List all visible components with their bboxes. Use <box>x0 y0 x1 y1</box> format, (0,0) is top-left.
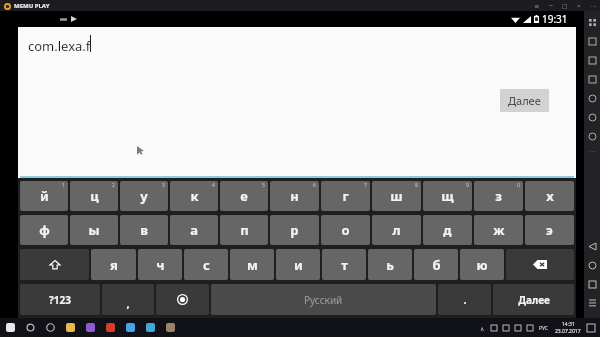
button[interactable]: з <box>474 181 523 211</box>
button[interactable]: л <box>372 215 421 245</box>
button[interactable]: я <box>91 249 136 280</box>
button[interactable]: г <box>321 181 370 211</box>
staticText: 8 <box>415 182 418 189</box>
button[interactable]: Taskbar item 7 <box>145 322 156 333</box>
staticText: к <box>190 187 199 205</box>
staticText: р <box>290 221 299 239</box>
button[interactable]: ш <box>372 181 421 211</box>
button[interactable]: м <box>230 249 274 280</box>
button[interactable]: Tool 1 <box>585 34 599 48</box>
button[interactable]: к <box>170 181 218 211</box>
staticText: 0 <box>517 182 520 189</box>
staticText: я <box>110 256 118 274</box>
button[interactable]: Taskbar item 4 <box>85 322 96 333</box>
button[interactable]: у <box>120 181 168 211</box>
button[interactable]: Taskbar item 2 <box>45 322 56 333</box>
staticText: 9 <box>466 182 469 189</box>
staticText: . <box>463 292 467 307</box>
staticText: м <box>247 256 258 274</box>
button[interactable]: р <box>270 215 319 245</box>
staticText: ⋯ <box>589 148 596 156</box>
button[interactable]: ж <box>474 215 523 245</box>
staticText: е <box>240 187 248 205</box>
staticText: б <box>432 256 441 274</box>
button[interactable]: Taskbar item 3 <box>65 322 76 333</box>
staticText: MEMU PLAY <box>14 2 50 10</box>
staticText: д <box>443 221 452 239</box>
button[interactable]: Далее <box>500 89 549 112</box>
staticText: 19:31 <box>542 12 568 26</box>
button[interactable]: Comma <box>102 284 154 315</box>
button[interactable]: Back <box>584 238 600 254</box>
staticText: 23.07.2017 <box>555 328 581 335</box>
staticText: Далее <box>518 293 550 307</box>
button[interactable]: × <box>575 2 582 9</box>
button[interactable]: Tool 2 <box>585 53 599 67</box>
button[interactable]: Tool 6 <box>585 129 599 143</box>
staticText: ч <box>156 256 165 274</box>
staticText: п <box>240 221 249 239</box>
button[interactable]: д <box>423 215 472 245</box>
button[interactable]: и <box>276 249 320 280</box>
button[interactable]: х <box>525 181 574 211</box>
button[interactable]: ч <box>138 249 182 280</box>
staticText: ж <box>493 221 505 239</box>
button[interactable]: Taskbar item 8 <box>165 322 176 333</box>
staticText: с <box>203 256 210 274</box>
button[interactable]: Taskbar item 1 <box>25 322 36 333</box>
button[interactable]: т <box>322 249 366 280</box>
button[interactable]: ≡ <box>533 2 540 9</box>
button[interactable]: п <box>220 215 268 245</box>
button[interactable]: Taskbar item 0 <box>5 322 16 333</box>
staticText: г <box>342 187 349 205</box>
button[interactable]: Далее <box>493 284 574 315</box>
staticText: × <box>577 2 581 9</box>
staticText: □ <box>562 2 568 9</box>
button[interactable]: б <box>414 249 458 280</box>
button[interactable]: Recents <box>584 276 600 292</box>
button[interactable]: ?123 <box>20 284 100 315</box>
staticText: й <box>40 187 49 205</box>
staticText: х <box>546 187 554 205</box>
button[interactable]: □ <box>561 2 568 9</box>
button[interactable]: с <box>184 249 228 280</box>
button[interactable]: в <box>120 215 168 245</box>
button[interactable]: щ <box>423 181 472 211</box>
staticText: ?123 <box>49 293 71 307</box>
staticText: ю <box>476 256 488 274</box>
button[interactable]: й <box>20 181 68 211</box>
button[interactable]: Change language <box>156 284 209 315</box>
button[interactable]: ⋯ <box>589 2 596 9</box>
button[interactable]: е <box>220 181 268 211</box>
button[interactable]: ─ <box>547 2 554 9</box>
button[interactable]: Shift <box>20 249 89 280</box>
button[interactable]: н <box>270 181 319 211</box>
button[interactable]: ц <box>70 181 118 211</box>
staticText: л <box>392 221 401 239</box>
button[interactable]: Taskbar item 5 <box>105 322 116 333</box>
button[interactable]: ь <box>368 249 412 280</box>
staticText: ∧ <box>480 325 485 332</box>
button[interactable]: а <box>170 215 218 245</box>
button[interactable]: ы <box>70 215 118 245</box>
button[interactable]: Home <box>584 257 600 273</box>
button[interactable]: Tool 0 <box>585 15 599 29</box>
button[interactable]: Taskbar item 6 <box>125 322 136 333</box>
staticText: в <box>140 221 148 239</box>
button[interactable]: ю <box>460 249 504 280</box>
staticText: ≡ <box>534 2 540 9</box>
button[interactable]: э <box>525 215 574 245</box>
button[interactable]: Tool 3 <box>585 72 599 86</box>
button[interactable]: Menu <box>584 295 600 311</box>
button[interactable]: Русский <box>211 284 436 315</box>
button[interactable]: Tool 5 <box>585 110 599 124</box>
staticText: РУС <box>539 325 549 332</box>
button[interactable]: Tool 4 <box>585 91 599 105</box>
button[interactable]: ф <box>20 215 68 245</box>
button[interactable]: Backspace <box>506 249 574 280</box>
staticText: Далее <box>508 93 541 108</box>
button[interactable]: о <box>321 215 370 245</box>
button[interactable]: Period <box>438 284 491 315</box>
staticText: , <box>126 296 130 311</box>
staticText: 3 <box>162 182 165 189</box>
